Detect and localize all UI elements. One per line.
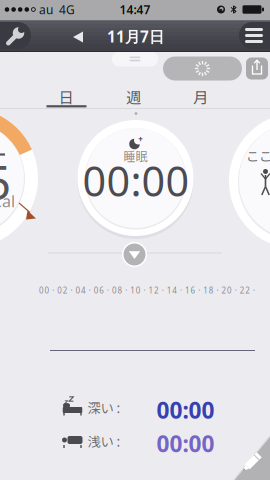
staticText: 深い : bbox=[87, 398, 120, 417]
button[interactable]: Share bbox=[246, 57, 268, 79]
staticText: 浅い : bbox=[87, 431, 120, 451]
button[interactable]: 月 bbox=[178, 87, 222, 105]
staticText: 00:00 bbox=[156, 428, 214, 458]
button[interactable]: Refresh bbox=[163, 56, 242, 80]
staticText: au bbox=[39, 1, 53, 17]
button[interactable]: Collapse bbox=[121, 241, 147, 267]
staticText: 睡眠 bbox=[123, 147, 147, 165]
button[interactable]: Edit bbox=[230, 436, 270, 480]
button[interactable]: 週 bbox=[111, 87, 155, 105]
button[interactable]: Menu bbox=[239, 22, 270, 49]
staticText: 月 bbox=[193, 85, 208, 108]
staticText: 00:00 bbox=[82, 153, 189, 208]
staticText: kcal bbox=[0, 190, 15, 212]
staticText: + bbox=[138, 134, 143, 144]
staticText: 4G bbox=[59, 1, 75, 17]
staticText: 00:00 bbox=[156, 395, 214, 425]
button[interactable]: Back bbox=[67, 26, 89, 48]
staticText: ここ bbox=[246, 146, 270, 165]
staticText: 週 bbox=[126, 85, 141, 108]
staticText: 11月7日 bbox=[107, 26, 164, 47]
button[interactable]: Open panel bbox=[112, 51, 158, 66]
staticText: 00 · 02 · 04 · 06 · 08 · 10 · 12 · 14 · … bbox=[39, 285, 255, 296]
button[interactable]: Settings bbox=[0, 22, 31, 49]
staticText: 日 bbox=[58, 85, 73, 108]
button[interactable]: 日 bbox=[44, 87, 88, 105]
staticText: 14:47 bbox=[119, 1, 150, 17]
staticText: 5 bbox=[0, 151, 11, 213]
